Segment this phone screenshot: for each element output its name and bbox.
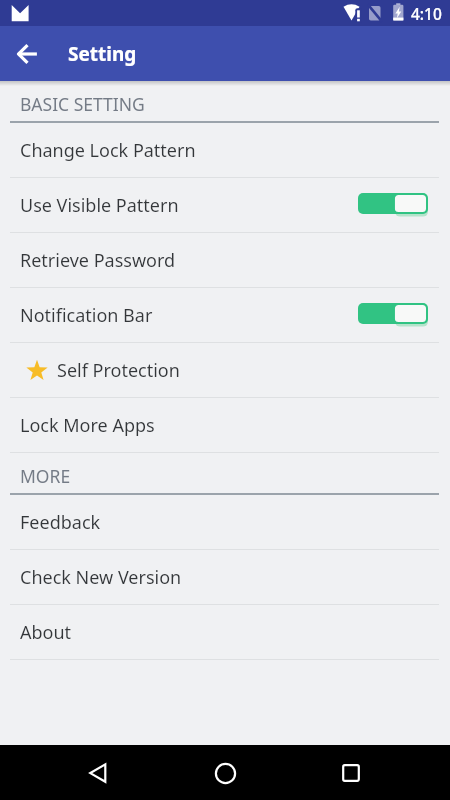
- button[interactable]: [358, 193, 428, 217]
- button[interactable]: Notification Bar: [0, 288, 450, 343]
- staticText: Retrieve Password: [20, 248, 176, 273]
- staticText: About: [20, 620, 72, 645]
- staticText: BASIC SETTING: [20, 92, 145, 116]
- button[interactable]: [213, 761, 237, 785]
- staticText: 4:10: [411, 3, 442, 24]
- button[interactable]: Lock More Apps: [0, 398, 450, 453]
- button[interactable]: [339, 761, 363, 785]
- button[interactable]: Retrieve Password: [0, 233, 450, 288]
- button[interactable]: [358, 303, 428, 327]
- staticText: Use Visible Pattern: [20, 193, 179, 218]
- button[interactable]: Use Visible Pattern: [0, 178, 450, 233]
- button[interactable]: Check New Version: [0, 550, 450, 605]
- staticText: Self Protection: [57, 358, 180, 383]
- staticText: Check New Version: [20, 565, 182, 590]
- button[interactable]: [0, 30, 48, 78]
- button[interactable]: About: [0, 605, 450, 660]
- button[interactable]: Change Lock Pattern: [0, 123, 450, 178]
- staticText: Notification Bar: [20, 303, 153, 328]
- button[interactable]: [86, 761, 110, 785]
- staticText: Setting: [68, 41, 137, 67]
- staticText: MORE: [20, 464, 71, 488]
- staticText: Change Lock Pattern: [20, 138, 196, 163]
- staticText: Lock More Apps: [20, 413, 155, 438]
- staticText: Feedback: [20, 510, 101, 535]
- button[interactable]: Self Protection: [0, 343, 450, 398]
- button[interactable]: Feedback: [0, 495, 450, 550]
